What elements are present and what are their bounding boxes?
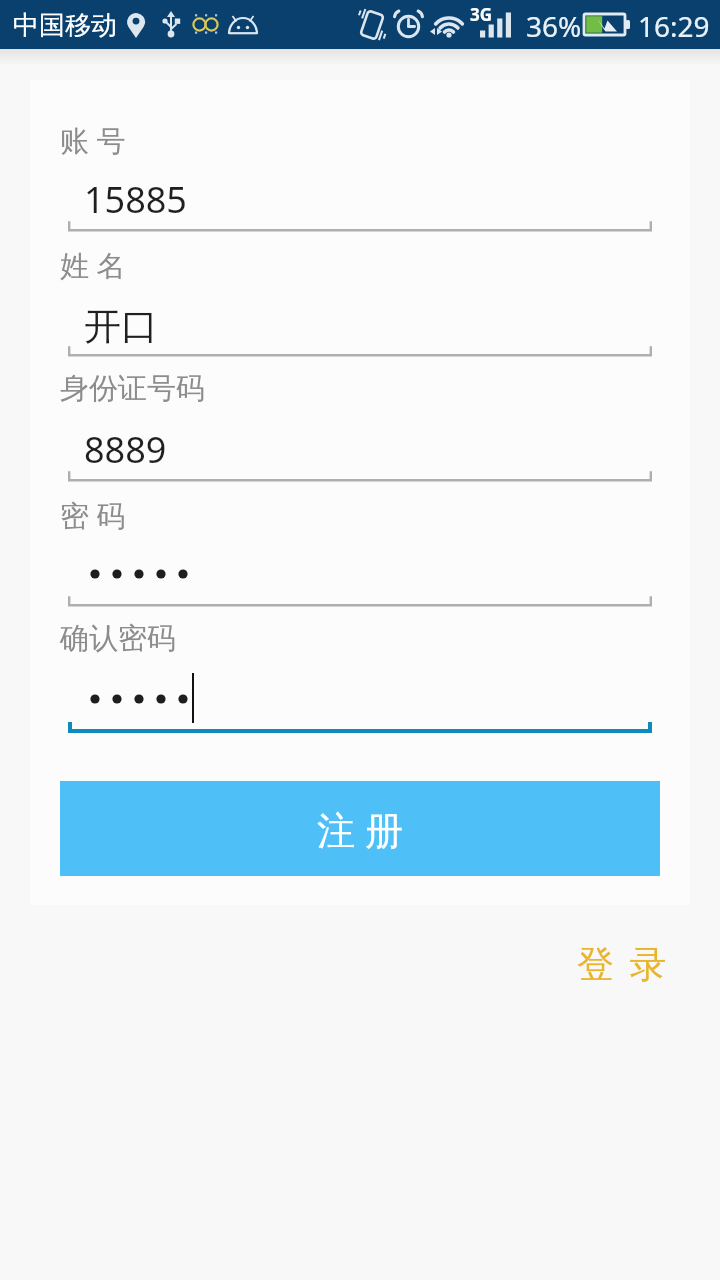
staticText: 注 册	[317, 803, 403, 855]
staticText: 15885	[84, 175, 187, 224]
staticText: 登 录	[577, 937, 670, 988]
staticText: 开口	[84, 303, 158, 350]
button[interactable]: 登 录	[563, 934, 683, 990]
staticText: 8889	[84, 425, 167, 474]
button[interactable]: 账 号	[60, 112, 660, 232]
staticText: 36%	[526, 7, 582, 45]
button[interactable]: 密 码	[60, 487, 660, 607]
staticText: 确认密码	[60, 620, 176, 657]
staticText: 3G	[470, 3, 493, 26]
staticText: 中国移动	[13, 9, 117, 42]
staticText: 身份证号码	[60, 370, 205, 407]
staticText: 账 号	[60, 120, 126, 160]
staticText: 姓 名	[60, 245, 126, 285]
button[interactable]: 身份证号码	[60, 362, 660, 482]
staticText: 密 码	[60, 495, 126, 535]
button[interactable]: 姓 名	[60, 237, 660, 357]
button[interactable]: 注 册	[60, 781, 660, 876]
staticText: 16:29	[638, 7, 710, 45]
button[interactable]: 确认密码	[60, 612, 660, 732]
